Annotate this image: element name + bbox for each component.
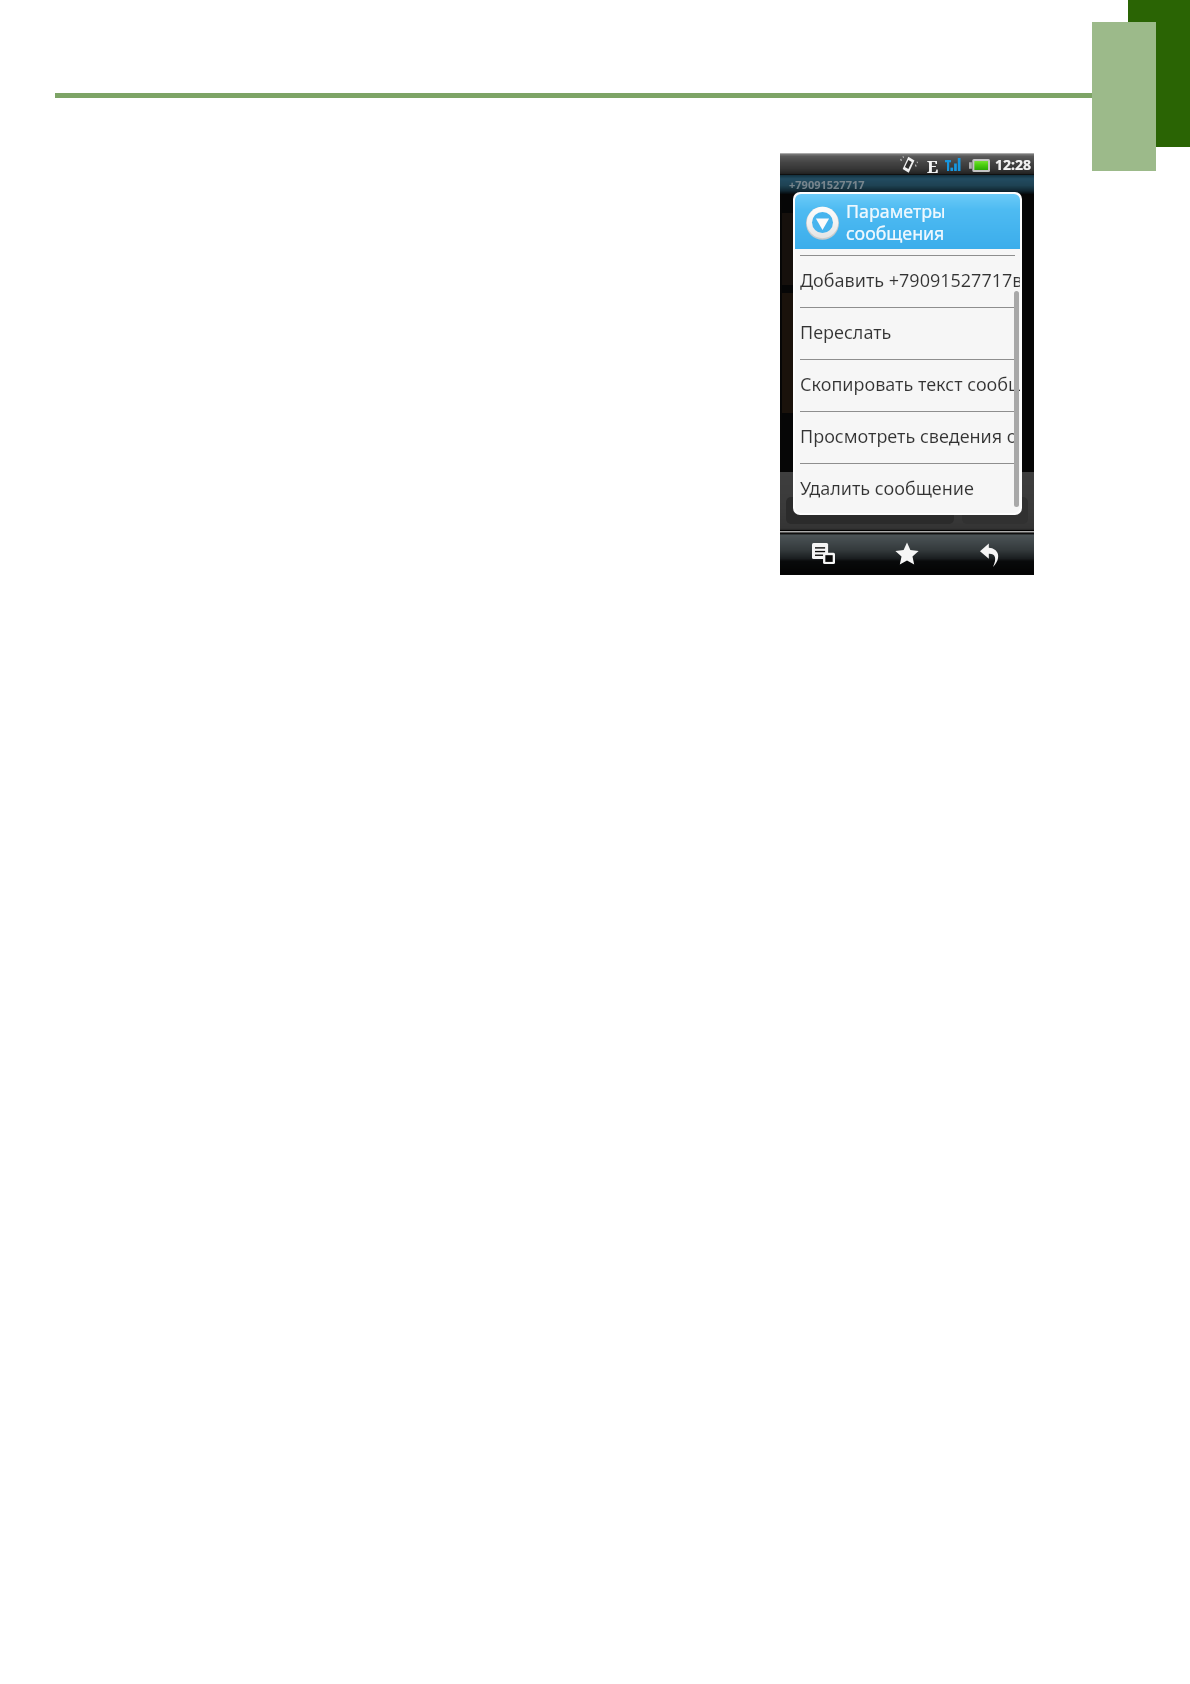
- staticText: Удалить сообщение: [800, 476, 974, 501]
- button[interactable]: Переслать: [795, 308, 1020, 359]
- staticText: Параметры сообщения: [846, 199, 946, 245]
- staticText: Добавить +79091527717в: [800, 268, 1020, 293]
- button[interactable]: Просмотреть сведения о: [795, 412, 1020, 463]
- staticText: Скопировать текст сообщ: [800, 372, 1020, 397]
- staticText: Переслать: [800, 320, 892, 345]
- staticText: Просмотреть сведения о: [800, 424, 1018, 449]
- button[interactable]: Back: [968, 534, 1012, 575]
- button[interactable]: Удалить сообщение: [795, 464, 1020, 513]
- button[interactable]: Скопировать текст сообщ: [795, 360, 1020, 411]
- button[interactable]: Добавить +79091527717в: [795, 256, 1020, 307]
- staticText: E: [927, 155, 939, 177]
- staticText: 12:28: [995, 155, 1031, 174]
- button[interactable]: Параметры сообщения: [795, 194, 1020, 249]
- button[interactable]: Favorite: [885, 533, 929, 574]
- button[interactable]: Messages: [801, 533, 845, 574]
- staticText: +79091527717: [789, 177, 865, 192]
